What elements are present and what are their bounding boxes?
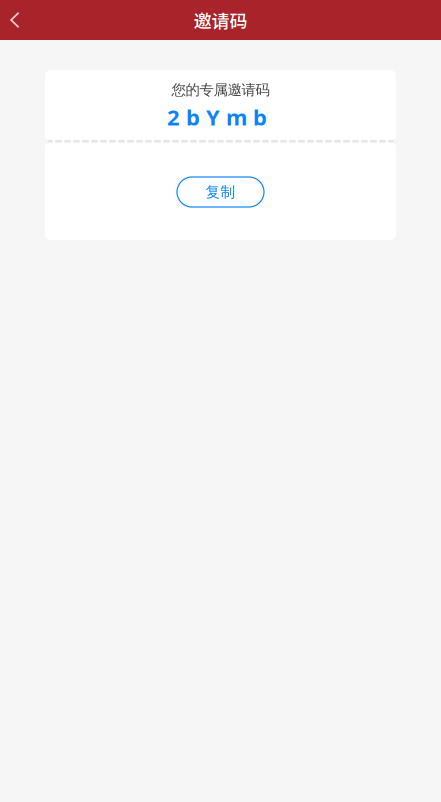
staticText: 邀请码	[193, 7, 247, 33]
staticText: 您的专属邀请码	[171, 81, 269, 99]
staticText: 2 b Y m b	[167, 102, 267, 132]
staticText: 复制	[205, 183, 235, 201]
button[interactable]: Back	[0, 0, 30, 40]
button[interactable]: 复制	[177, 177, 264, 207]
